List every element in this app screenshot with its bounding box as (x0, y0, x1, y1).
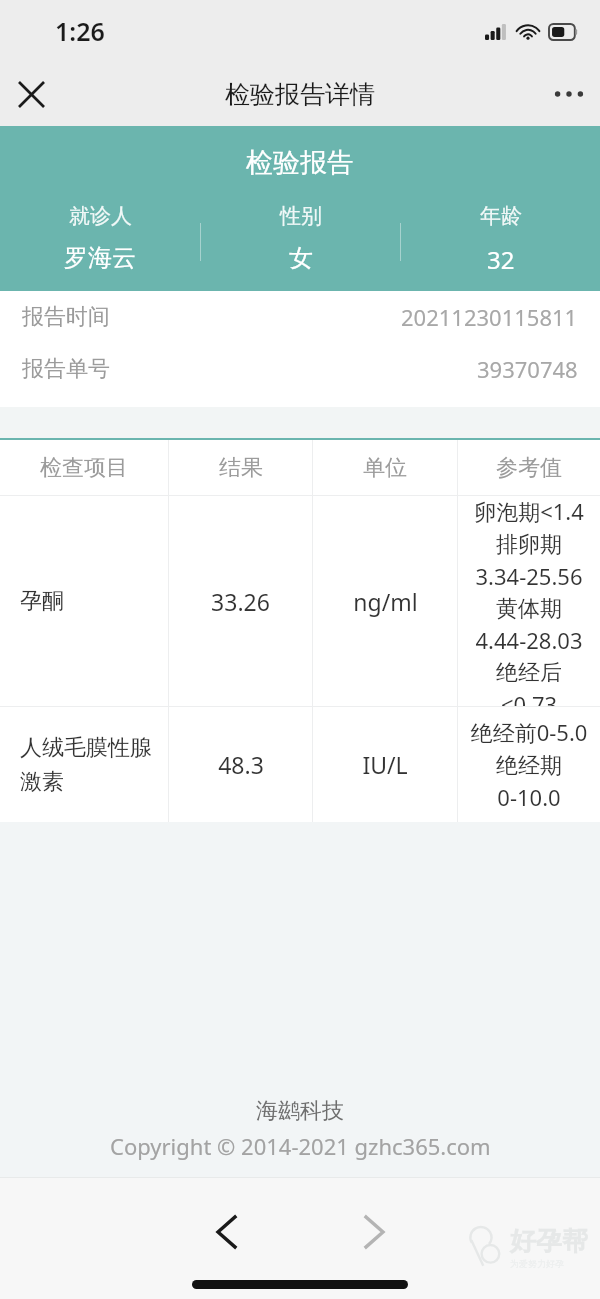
staticText: IU/L (362, 749, 408, 780)
staticText: Copyright © 2014-2021 gzhc365.com (110, 1131, 491, 1161)
staticText: 1:26 (55, 14, 105, 48)
staticText: 检验报告详情 (225, 79, 375, 110)
staticText: 48.3 (218, 749, 264, 780)
staticText: 人绒毛膜性腺激素 (20, 734, 158, 796)
staticText: 卵泡期<1.4排卵期3.34-25.56黄体期4.44-28.03绝经后<0.7… (468, 496, 590, 706)
button[interactable]: 人绒毛膜性腺激素 (0, 707, 600, 822)
staticText: 检验报告 (246, 146, 354, 180)
staticText: 单位 (363, 454, 407, 482)
button[interactable]: Back (189, 1195, 263, 1269)
staticText: 为爱努力好孕 (510, 1258, 564, 1269)
button[interactable]: Forward (337, 1195, 411, 1269)
staticText: 结果 (219, 454, 263, 482)
staticText: 罗海云 (64, 243, 136, 273)
staticText: 绝经前0-5.0绝经期0-10.0 (468, 717, 590, 813)
staticText: 33.26 (211, 586, 270, 617)
staticText: 32 (487, 243, 515, 276)
staticText: 20211230115811 (401, 302, 578, 332)
staticText: 海鹚科技 (256, 1097, 344, 1125)
staticText: 检查项目 (40, 454, 128, 482)
staticText: 孕酮 (20, 587, 64, 615)
staticText: 女 (289, 243, 313, 273)
staticText: 就诊人 (69, 203, 132, 229)
button[interactable]: More options (538, 63, 600, 125)
button[interactable]: Close (0, 63, 62, 125)
staticText: ng/ml (353, 586, 418, 617)
staticText: 年龄 (480, 203, 522, 229)
staticText: 参考值 (496, 454, 562, 482)
staticText: 报告单号 (22, 355, 110, 383)
staticText: 39370748 (477, 354, 578, 384)
staticText: 报告时间 (22, 303, 110, 331)
staticText: 好孕帮 (510, 1225, 588, 1258)
staticText: 性别 (280, 203, 322, 229)
button[interactable]: 孕酮 (0, 496, 600, 706)
